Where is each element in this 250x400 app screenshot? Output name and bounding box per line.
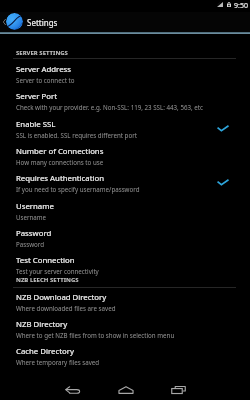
staticText: Test your server connectivity [16,267,99,275]
staticText: SERVER SETTINGS [16,49,68,57]
button[interactable]: Back [46,386,99,400]
staticText: Cache Directory [16,346,74,357]
button[interactable]: Server Port [0,87,250,114]
button[interactable]: Requires Authentication [0,169,250,196]
button[interactable]: Test Connection [0,251,250,278]
staticText: Password [16,228,52,239]
staticText: Where downloaded files are saved [16,304,116,312]
button[interactable]: Server Address [0,60,250,87]
staticText: Check with your provider. e.g. Non-SSL: … [16,103,203,111]
button[interactable]: Username [0,197,250,224]
staticText: If you need to specify username/password [16,185,140,193]
button[interactable]: Cache Directory [0,342,250,369]
button[interactable]: NZB Directory [0,315,250,342]
button[interactable]: Recent apps [152,386,205,400]
staticText: Server Address [16,64,72,75]
button[interactable]: Number of Connections [0,142,250,169]
staticText: Test Connection [16,255,75,266]
staticText: Number of Connections [16,146,104,157]
staticText: How many connections to use [16,158,104,166]
button[interactable]: NZB Download Directory [0,288,250,315]
staticText: Settings [27,17,58,28]
button[interactable]: Home [99,386,152,400]
staticText: 9:50 [234,1,248,11]
staticText: NZB Download Directory [16,292,107,303]
staticText: Server to connect to [16,76,75,84]
staticText: Where temporary files saved [16,358,100,366]
staticText: Enable SSL [16,119,56,130]
staticText: SSL is enabled. SSL requires different p… [16,131,137,139]
staticText: NZB Directory [16,319,68,330]
button[interactable]: Password [0,224,250,251]
button[interactable]: Enable SSL [0,115,250,142]
staticText: Requires Authentication [16,173,105,184]
staticText: Username [16,213,47,221]
staticText: NZB LEECH SETTINGS [16,276,79,284]
staticText: Server Port [16,91,57,102]
staticText: Username [16,201,54,212]
staticText: Where to get NZB files from to show in s… [16,331,175,339]
button[interactable]: Navigate up [0,12,9,32]
staticText: Password [16,240,44,248]
